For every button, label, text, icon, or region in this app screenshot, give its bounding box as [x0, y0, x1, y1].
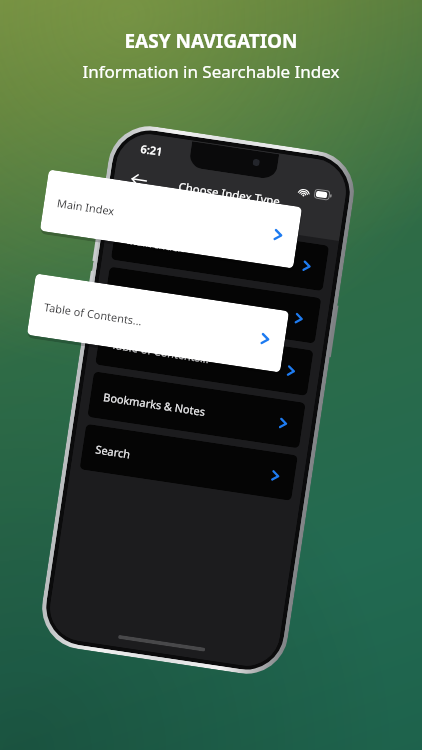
button[interactable]: Search [79, 424, 298, 501]
staticText: EASY NAVIGATION [124, 28, 298, 54]
staticText: 6:21 [139, 141, 163, 159]
button[interactable]: Legend [103, 266, 321, 344]
button[interactable]: Table of Contents... [95, 319, 313, 396]
staticText: Table of Contents... [110, 337, 210, 366]
button[interactable]: Main Index [111, 214, 329, 291]
button[interactable]: Main Index [40, 169, 302, 269]
staticText: Choose Index Type [177, 179, 281, 210]
staticText: Table of Contents... [43, 299, 143, 329]
staticText: Bookmarks & Notes [102, 389, 206, 419]
staticText: Main Index [126, 232, 185, 255]
staticText: Search [94, 441, 131, 461]
staticText: Information in Searchable Index [82, 60, 340, 83]
button[interactable]: Table of Contents... [27, 273, 289, 373]
button[interactable]: Bookmarks & Notes [87, 371, 306, 448]
button[interactable]: Back [120, 160, 158, 199]
staticText: Legend [118, 284, 159, 305]
staticText: Main Index [56, 195, 116, 218]
